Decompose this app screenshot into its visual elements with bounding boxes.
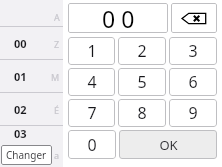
button[interactable]: 3 bbox=[169, 37, 217, 65]
staticText: M bbox=[51, 71, 60, 83]
staticText: 8 bbox=[137, 102, 147, 124]
button[interactable]: 02 bbox=[0, 93, 63, 126]
staticText: A bbox=[54, 11, 60, 23]
staticText: 2 bbox=[137, 40, 147, 62]
button[interactable]: 4 bbox=[68, 68, 115, 96]
staticText: É bbox=[54, 104, 60, 116]
button[interactable]: 8 bbox=[118, 99, 166, 127]
button[interactable]: 1 bbox=[68, 37, 115, 65]
button[interactable]: OK bbox=[119, 130, 217, 159]
staticText: 0 bbox=[87, 134, 97, 156]
staticText: 03 bbox=[14, 126, 27, 141]
button[interactable]: Changer bbox=[1, 145, 52, 165]
staticText: 02 bbox=[14, 102, 27, 117]
button[interactable]: 5 bbox=[118, 68, 166, 96]
button[interactable]: 0 bbox=[68, 130, 116, 159]
staticText: 5 bbox=[137, 71, 147, 93]
button[interactable]: 9 bbox=[169, 99, 217, 127]
staticText: a bbox=[54, 149, 60, 161]
staticText: OK bbox=[159, 136, 178, 154]
staticText: 3 bbox=[188, 40, 198, 62]
button[interactable]: 01 bbox=[0, 60, 63, 93]
staticText: 00 bbox=[14, 36, 27, 51]
button[interactable]: 6 bbox=[169, 68, 217, 96]
staticText: 6 bbox=[188, 71, 198, 93]
button[interactable]: 2 bbox=[118, 37, 166, 65]
staticText: 1 bbox=[87, 40, 97, 62]
staticText: 9 bbox=[188, 102, 198, 124]
staticText: 7 bbox=[87, 102, 97, 124]
staticText: 0 0 bbox=[102, 3, 135, 33]
button[interactable]: 7 bbox=[68, 99, 115, 127]
button[interactable]: 00 bbox=[0, 27, 63, 60]
staticText: Z bbox=[54, 38, 60, 50]
staticText: 01 bbox=[14, 69, 27, 84]
staticText: 4 bbox=[87, 71, 97, 93]
staticText: Changer bbox=[6, 148, 47, 162]
button[interactable]: Backspace bbox=[171, 3, 217, 33]
